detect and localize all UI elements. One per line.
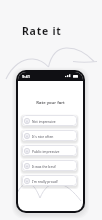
- staticText: It's nice often: [32, 134, 54, 138]
- staticText: Public impressive: [32, 149, 60, 153]
- staticText: I'm really proud!: [32, 179, 58, 183]
- staticText: Not impressive: [32, 119, 56, 123]
- staticText: It was the best!: [32, 164, 57, 168]
- staticText: 9:41: [22, 74, 30, 79]
- button[interactable]: I'm really proud!: [22, 175, 77, 186]
- button[interactable]: It's nice often: [22, 130, 77, 141]
- button[interactable]: Public impressive: [22, 145, 77, 156]
- staticText: Rate your fart: [18, 100, 83, 106]
- button[interactable]: It was the best!: [22, 160, 77, 171]
- staticText: Rate it: [22, 24, 62, 38]
- button[interactable]: Not impressive: [22, 115, 77, 126]
